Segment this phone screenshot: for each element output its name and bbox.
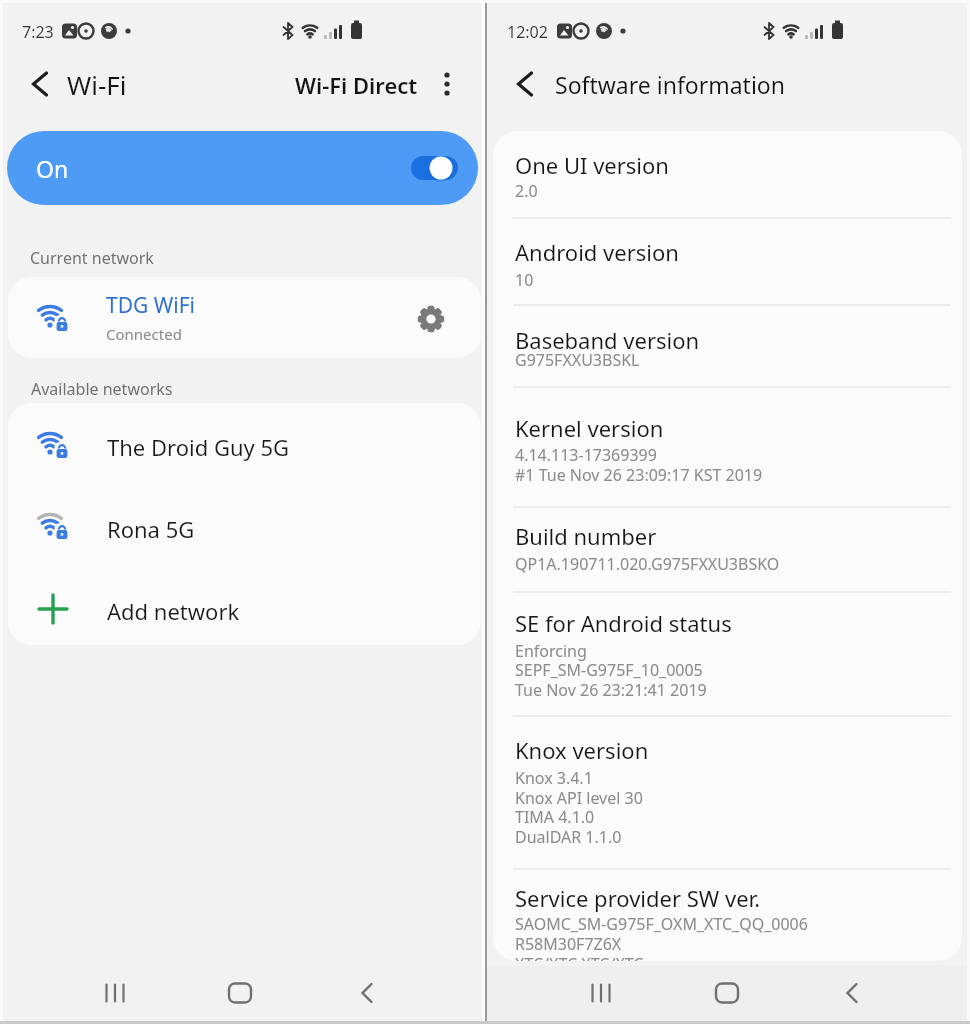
staticText: TDG WiFi [106, 291, 196, 320]
button[interactable] [432, 64, 464, 104]
staticText: The Droid Guy 5G [107, 432, 290, 462]
staticText: Available networks [31, 378, 173, 400]
staticText: Kernel version [515, 413, 664, 443]
button[interactable] [493, 218, 962, 305]
button[interactable] [493, 387, 962, 507]
button[interactable] [493, 507, 962, 592]
button[interactable]: On [7, 131, 478, 205]
staticText: Enforcing [515, 640, 587, 662]
button[interactable] [493, 592, 962, 716]
button[interactable] [337, 965, 397, 1021]
button[interactable] [8, 403, 481, 484]
staticText: Baseband version [515, 325, 700, 355]
staticText: R58M30F7Z6X [515, 933, 622, 955]
button[interactable] [697, 966, 757, 1022]
staticText: Wi-Fi Direct [295, 70, 418, 100]
button[interactable] [493, 305, 962, 387]
staticText: Rona 5G [107, 514, 195, 544]
staticText: Service provider SW ver. [515, 883, 761, 913]
button[interactable] [210, 965, 270, 1021]
staticText: Add network [107, 596, 240, 626]
staticText: Tue Nov 26 23:21:41 2019 [515, 679, 707, 701]
staticText: SEPF_SM-G975F_10_0005 [515, 659, 703, 681]
staticText: Wi-Fi [67, 67, 127, 102]
staticText: Software information [555, 69, 785, 100]
staticText: Build number [515, 521, 657, 551]
staticText: 12:02 [507, 21, 548, 43]
staticText: On [36, 153, 69, 184]
button[interactable] [493, 869, 962, 961]
button[interactable] [822, 966, 882, 1022]
staticText: 4.14.113-17369399 [515, 444, 657, 466]
staticText: 7:23 [22, 21, 54, 43]
staticText: G975FXXU3BSKL [515, 349, 640, 371]
staticText: SE for Android status [515, 608, 732, 638]
staticText: Knox 3.4.1 [515, 767, 593, 789]
button[interactable] [85, 965, 145, 1021]
staticText: Connected [106, 324, 182, 344]
staticText: Current network [30, 247, 154, 269]
staticText: 2.0 [515, 180, 538, 202]
staticText: QP1A.190711.020.G975FXXU3BSKO [515, 553, 780, 575]
button[interactable] [8, 565, 481, 645]
staticText: Knox API level 30 [515, 787, 643, 809]
button[interactable] [8, 484, 481, 565]
staticText: #1 Tue Nov 26 23:09:17 KST 2019 [515, 464, 763, 486]
staticText: DualDAR 1.1.0 [515, 826, 622, 848]
button[interactable] [509, 64, 543, 104]
button[interactable] [493, 716, 962, 869]
staticText: SAOMC_SM-G975F_OXM_XTC_QQ_0006 [515, 913, 808, 935]
staticText: TIMA 4.1.0 [515, 806, 595, 828]
button[interactable] [493, 131, 962, 218]
staticText: Android version [515, 237, 679, 267]
button[interactable] [24, 64, 58, 104]
staticText: XTC/XTC,XTC/XTC [515, 953, 644, 961]
button[interactable] [571, 966, 631, 1022]
staticText: Knox version [515, 735, 649, 765]
button[interactable]: TDG WiFi [8, 277, 481, 358]
staticText: One UI version [515, 150, 669, 180]
staticText: 10 [515, 269, 534, 291]
